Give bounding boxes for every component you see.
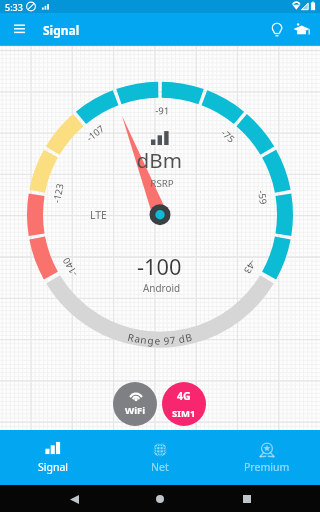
button[interactable]: Recent apps (234, 486, 260, 512)
staticText: Signal (38, 460, 69, 474)
staticText: Signal (43, 22, 80, 38)
button[interactable]: Signal (0, 430, 106, 485)
staticText: 4G (177, 389, 191, 403)
staticText: Premium (244, 460, 290, 474)
button[interactable]: WiFi (113, 382, 157, 426)
staticText: SIM1 (172, 407, 196, 420)
button[interactable]: Learn (289, 13, 314, 46)
staticText: WiFi (125, 404, 146, 417)
staticText: 5:33 (5, 1, 23, 13)
button[interactable]: Open navigation menu (2, 13, 36, 46)
button[interactable]: Net (106, 430, 213, 485)
staticText: Net (151, 460, 169, 474)
button[interactable]: Tips (265, 13, 289, 46)
button[interactable]: Premium (213, 430, 320, 485)
button[interactable]: 4G (162, 382, 206, 426)
button[interactable]: Home (147, 486, 173, 512)
button[interactable]: Back (61, 486, 87, 512)
